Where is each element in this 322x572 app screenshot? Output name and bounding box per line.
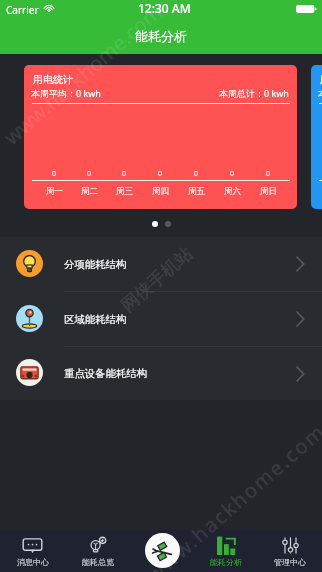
- staticText: 能耗分析: [135, 28, 187, 44]
- staticText: 周一: [46, 186, 63, 197]
- button[interactable]: 重点设备能耗结构: [0, 347, 322, 400]
- button[interactable]: 区域能耗结构: [0, 292, 322, 346]
- staticText: 网侠手机站: [117, 242, 197, 316]
- staticText: 本周平均：0 t: [318, 87, 322, 99]
- button[interactable]: 管理中心: [258, 530, 322, 572]
- button[interactable]: 用水统计: [311, 65, 322, 209]
- staticText: 0: [230, 169, 235, 179]
- staticText: 0: [52, 169, 57, 179]
- button[interactable]: 设备接入: [145, 533, 180, 568]
- staticText: 分项能耗结构: [64, 258, 127, 271]
- button[interactable]: 用电统计: [24, 65, 297, 209]
- staticText: 用水统计: [320, 73, 322, 86]
- staticText: 0: [87, 169, 92, 179]
- staticText: 周四: [152, 186, 169, 197]
- staticText: 周五: [188, 186, 205, 197]
- staticText: 周六: [224, 186, 241, 197]
- staticText: 本周平均：0 kwh: [31, 87, 101, 99]
- staticText: 周三: [116, 186, 133, 197]
- staticText: 区域能耗结构: [64, 313, 127, 326]
- staticText: 能耗总览: [82, 557, 114, 567]
- staticText: 0: [122, 169, 127, 179]
- staticText: 0: [194, 169, 199, 179]
- staticText: 12:30 AM: [138, 0, 191, 16]
- staticText: 本周总计：0 kwh: [219, 87, 289, 99]
- staticText: 用电统计: [33, 73, 73, 86]
- button[interactable]: 能耗总览: [65, 530, 130, 572]
- staticText: Carrier: [6, 3, 39, 17]
- staticText: 0: [158, 169, 163, 179]
- staticText: 0: [266, 169, 271, 179]
- button[interactable]: 能耗分析: [194, 530, 258, 572]
- staticText: www.hackhome.com: [0, 0, 168, 150]
- staticText: 能耗分析: [210, 557, 242, 567]
- staticText: 周二: [81, 186, 98, 197]
- button[interactable]: 消息中心: [0, 530, 65, 572]
- staticText: 消息中心: [17, 557, 49, 567]
- staticText: 重点设备能耗结构: [64, 367, 148, 380]
- staticText: 管理中心: [274, 557, 306, 567]
- staticText: www.hackhome.com: [141, 417, 322, 572]
- button[interactable]: 分项能耗结构: [0, 237, 322, 291]
- staticText: 周日: [260, 186, 277, 197]
